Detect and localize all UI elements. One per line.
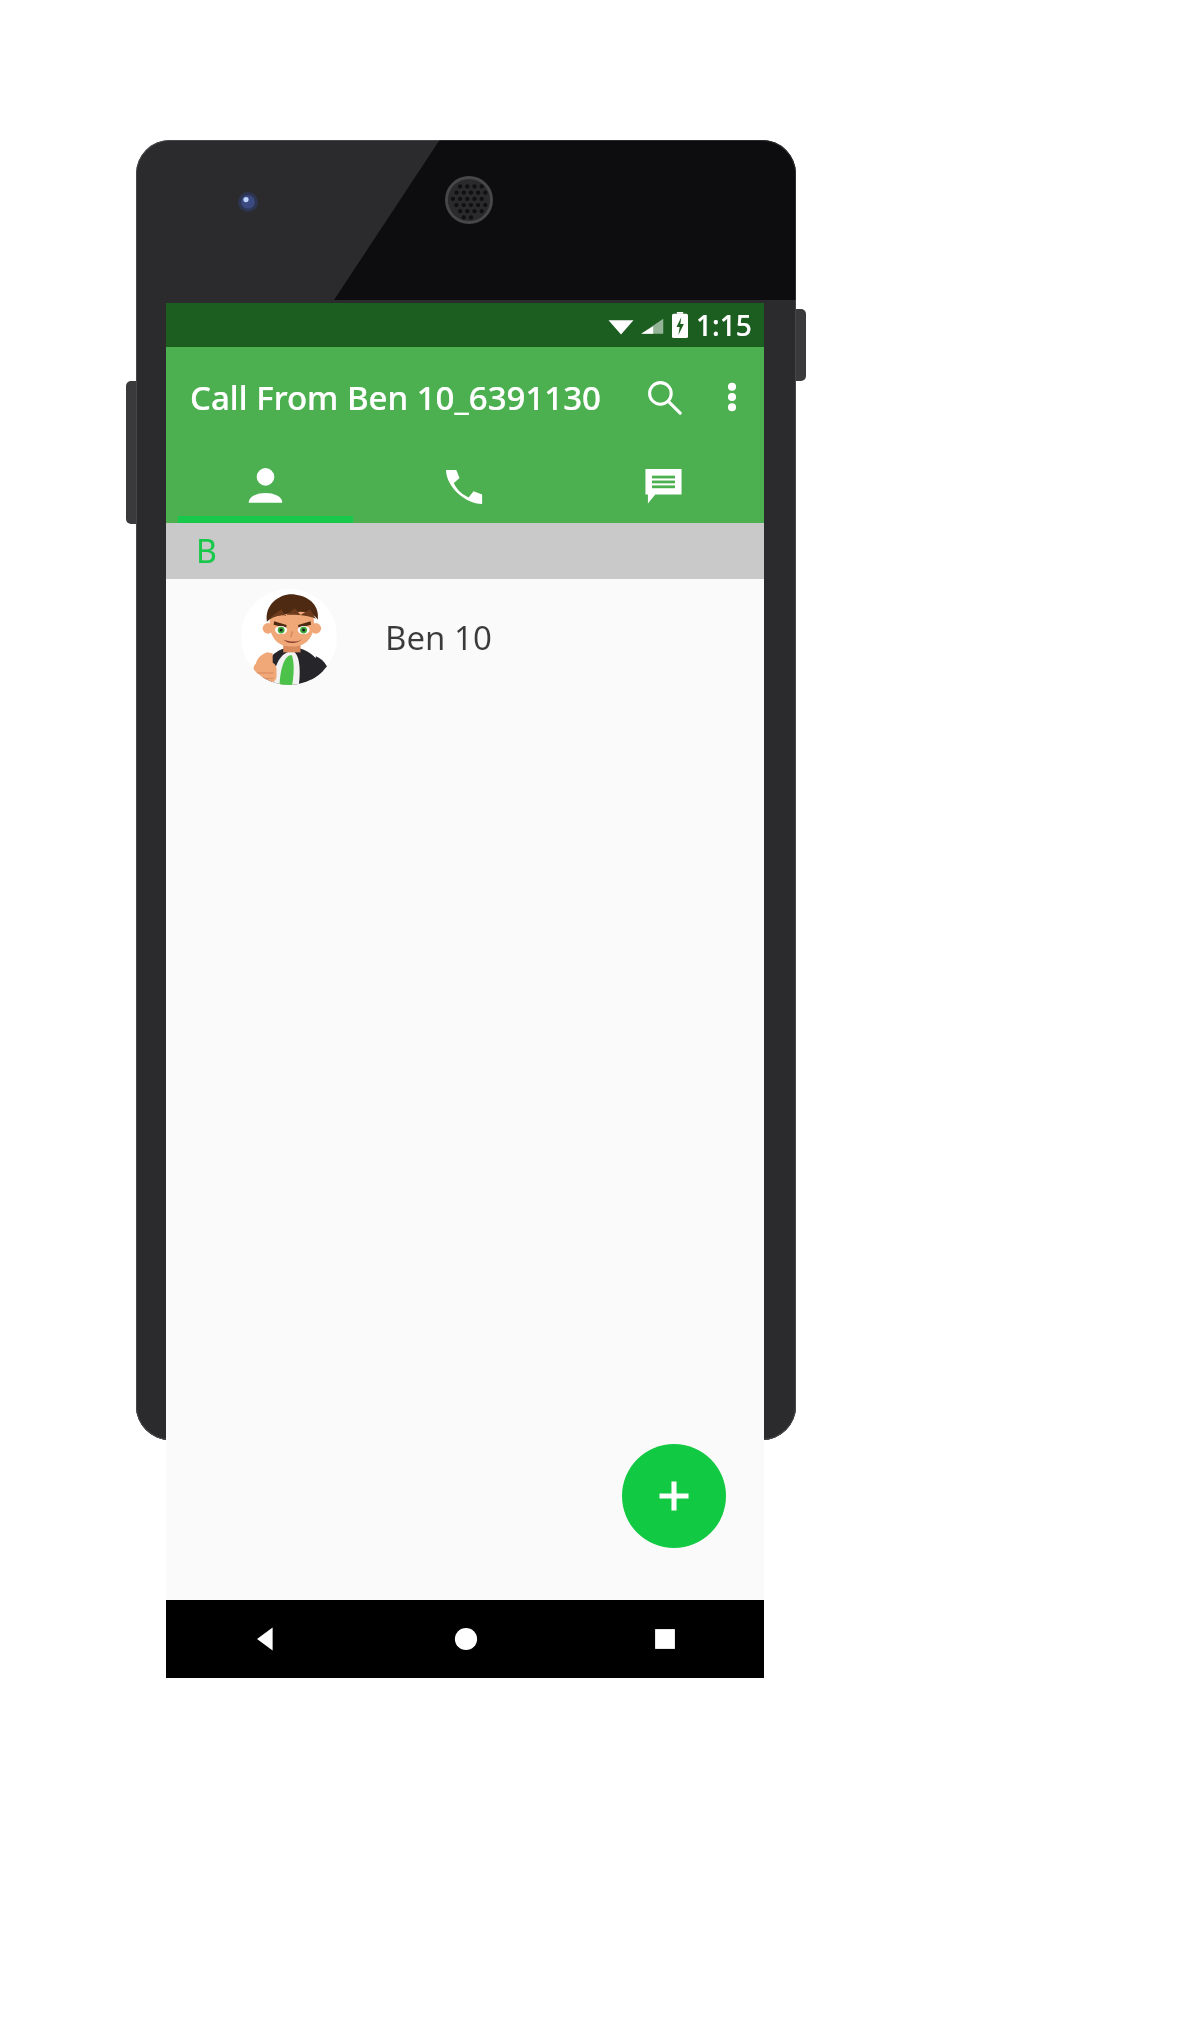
button[interactable]: Calls: [365, 447, 564, 523]
staticText: Ben 10: [385, 615, 492, 660]
button[interactable]: Recents: [565, 1600, 764, 1678]
staticText: Call From Ben 10_6391130: [190, 375, 601, 420]
button[interactable]: Search: [628, 355, 700, 439]
button[interactable]: Messages: [564, 447, 763, 523]
staticText: 1:15: [696, 306, 752, 344]
button[interactable]: More options: [700, 355, 764, 439]
button[interactable]: Ben 10: [166, 579, 764, 695]
button[interactable]: Contacts: [166, 447, 365, 523]
button[interactable]: Home: [366, 1600, 565, 1678]
staticText: B: [196, 529, 217, 573]
button[interactable]: Add contact: [622, 1444, 726, 1548]
button[interactable]: Back: [166, 1600, 366, 1678]
